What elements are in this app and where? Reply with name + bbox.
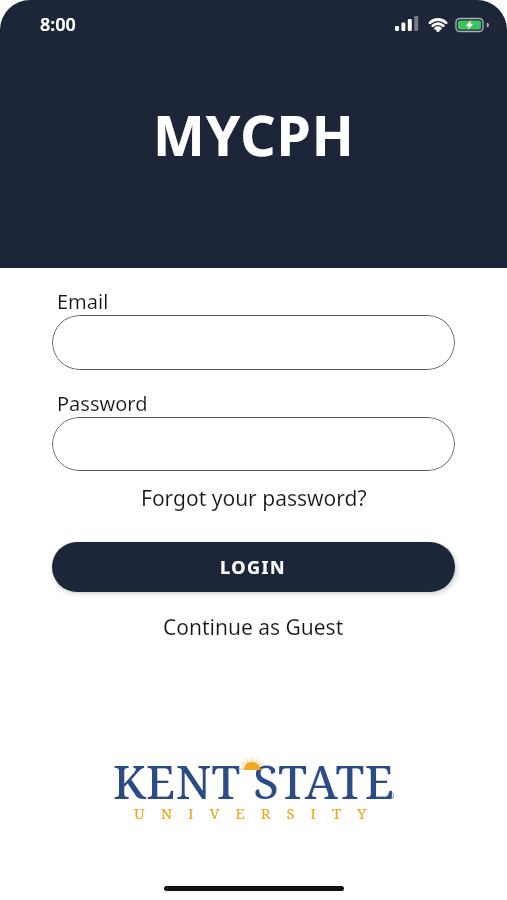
staticText: U N I V E R S I T Y [134,803,373,823]
button[interactable]: LOGIN [52,542,455,592]
staticText: Forgot your password? [141,484,367,513]
button[interactable] [52,417,455,471]
button[interactable] [52,315,455,370]
staticText: Continue as Guest [163,613,344,642]
button[interactable]: Continue as Guest [52,613,455,642]
staticText: 8:00 [40,12,76,37]
staticText: LOGIN [220,555,287,580]
staticText: ® [387,789,395,801]
staticText: Password [57,390,148,417]
staticText: Email [57,288,109,315]
staticText: MYCPH [153,97,355,172]
staticText: KENT STATE [113,750,395,813]
button[interactable]: Forgot your password? [52,484,455,513]
